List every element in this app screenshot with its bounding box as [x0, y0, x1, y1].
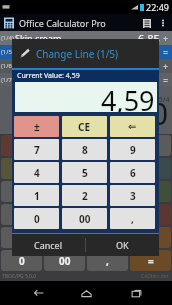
button[interactable]	[87, 204, 128, 225]
staticText: =	[163, 46, 169, 58]
staticText: 1	[34, 189, 40, 203]
staticText: (1/6)	[1, 62, 14, 70]
staticText: CE	[78, 120, 91, 134]
button[interactable]: 8	[62, 139, 107, 160]
button[interactable]: 3	[110, 185, 155, 206]
button[interactable]: More options	[156, 16, 170, 30]
button[interactable]: ⇐	[110, 116, 155, 137]
button[interactable]: (1/4)	[0, 31, 172, 45]
staticText: 0	[34, 212, 40, 226]
button[interactable]: Cancel	[12, 234, 85, 256]
button[interactable]: ,	[110, 208, 155, 229]
staticText: Office Calculator Pro	[19, 17, 106, 29]
button[interactable]: 6	[110, 162, 155, 183]
button[interactable]	[130, 204, 171, 225]
button[interactable]	[44, 181, 85, 202]
staticText: OK	[116, 239, 129, 251]
button[interactable]: 5	[62, 162, 107, 183]
staticText: 0	[19, 254, 25, 268]
button[interactable]: (1/7)	[0, 73, 172, 86]
staticText: ,	[106, 254, 109, 268]
button[interactable]: 9	[110, 139, 155, 160]
button[interactable]: 00	[62, 208, 107, 229]
button[interactable]	[130, 135, 171, 156]
button[interactable]	[1, 181, 42, 202]
staticText: 6	[130, 166, 136, 180]
button[interactable]: (1/5)	[0, 45, 172, 59]
staticText: 22:49	[146, 1, 170, 13]
staticText: 9	[130, 143, 136, 157]
button[interactable]	[44, 227, 85, 248]
staticText: (1/5)	[1, 48, 14, 56]
button[interactable]: Home	[73, 281, 99, 305]
button[interactable]: 0	[1, 250, 42, 271]
staticText: 5	[82, 166, 88, 180]
button[interactable]: 00	[44, 250, 85, 271]
staticText: 00	[59, 254, 71, 268]
button[interactable]: Recents	[123, 281, 149, 305]
staticText: 0	[151, 93, 169, 134]
staticText: 4,59	[101, 82, 155, 112]
staticText: +	[163, 32, 169, 44]
staticText: Change Line (1/5)	[36, 47, 119, 61]
staticText: 4	[34, 166, 40, 180]
button[interactable]: 7	[14, 139, 59, 160]
button[interactable]: Back	[24, 281, 50, 305]
staticText: = 5/4	[153, 95, 170, 105]
staticText: 2	[82, 189, 88, 203]
staticText: (1/4)	[1, 34, 14, 42]
button[interactable]: ,	[87, 250, 128, 271]
staticText: +	[163, 60, 169, 72]
button[interactable]	[87, 158, 128, 179]
staticText: 7	[34, 143, 40, 157]
button[interactable]: CE	[62, 116, 107, 137]
staticText: ±	[34, 120, 40, 134]
button[interactable]	[87, 227, 128, 248]
button[interactable]: 0	[14, 208, 59, 229]
button[interactable]: OK	[86, 234, 159, 256]
button[interactable]	[130, 181, 171, 202]
staticText: =	[163, 74, 169, 86]
staticText: ⇐	[128, 121, 137, 133]
staticText: 6,85	[138, 31, 160, 45]
button[interactable]: ±	[14, 116, 59, 137]
staticText: 3	[130, 189, 136, 203]
staticText: (1/7)	[1, 76, 14, 84]
button[interactable]	[130, 227, 171, 248]
staticText: CADbits.net	[141, 273, 169, 280]
button[interactable]: 4	[14, 162, 59, 183]
button[interactable]	[87, 181, 128, 202]
button[interactable]: Lines	[140, 16, 154, 30]
staticText: TBOC/PG 5.0.0	[2, 273, 37, 280]
button[interactable]: 1	[14, 185, 59, 206]
button[interactable]	[130, 158, 171, 179]
button[interactable]: 2	[62, 185, 107, 206]
button[interactable]	[1, 158, 42, 179]
staticText: ,	[131, 212, 134, 226]
button[interactable]	[87, 135, 128, 156]
staticText: 8	[82, 143, 88, 157]
button[interactable]	[44, 204, 85, 225]
staticText: 00	[79, 212, 91, 226]
button[interactable]: (1/6)	[0, 59, 172, 73]
button[interactable]	[44, 135, 85, 156]
button[interactable]	[44, 158, 85, 179]
staticText: Skin cream	[15, 32, 62, 44]
button[interactable]	[1, 135, 42, 156]
button[interactable]: =	[130, 250, 171, 271]
staticText: Cancel	[34, 239, 63, 251]
staticText: Current Value: 4,59	[17, 71, 80, 81]
staticText: =	[148, 254, 154, 268]
button[interactable]	[1, 227, 42, 248]
button[interactable]	[1, 204, 42, 225]
